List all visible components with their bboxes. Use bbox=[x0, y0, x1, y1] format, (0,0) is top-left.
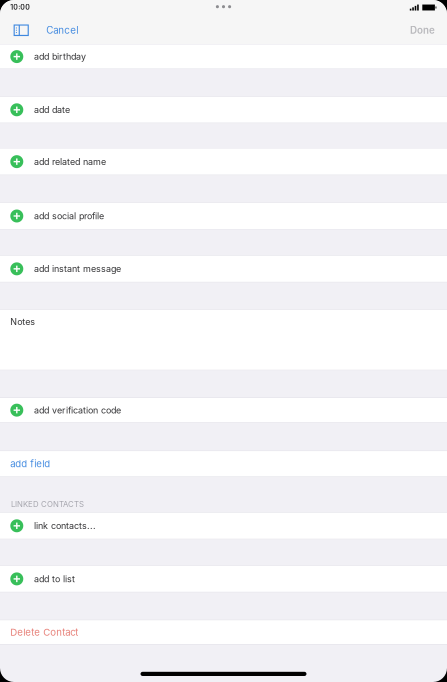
staticText: add date bbox=[34, 104, 70, 115]
button[interactable]: Notes bbox=[0, 310, 447, 370]
button[interactable]: Cancel bbox=[29, 18, 78, 44]
staticText: Done bbox=[410, 24, 435, 36]
button[interactable]: add field bbox=[0, 451, 447, 477]
button[interactable]: add birthday bbox=[0, 45, 447, 69]
staticText: 10:00 bbox=[10, 3, 30, 11]
button[interactable]: Done bbox=[410, 18, 447, 44]
staticText: add field bbox=[10, 458, 50, 470]
staticText: Delete Contact bbox=[10, 626, 78, 638]
button[interactable]: Show sidebar bbox=[0, 18, 29, 44]
staticText: add social profile bbox=[34, 211, 104, 221]
button[interactable]: add related name bbox=[0, 149, 447, 175]
button[interactable]: add verification code bbox=[0, 398, 447, 423]
staticText: add instant message bbox=[34, 263, 121, 274]
staticText: link contacts... bbox=[34, 520, 96, 531]
staticText: Notes bbox=[10, 316, 35, 327]
button[interactable]: add to list bbox=[0, 566, 447, 592]
staticText: Cancel bbox=[46, 24, 78, 36]
button[interactable]: link contacts... bbox=[0, 513, 447, 539]
button[interactable]: Delete Contact bbox=[0, 620, 447, 645]
button[interactable]: add date bbox=[0, 97, 447, 123]
button[interactable]: add instant message bbox=[0, 256, 447, 282]
staticText: add to list bbox=[34, 573, 75, 584]
staticText: LINKED CONTACTS bbox=[11, 499, 84, 509]
staticText: add birthday bbox=[34, 51, 86, 62]
button[interactable]: add social profile bbox=[0, 203, 447, 230]
staticText: add related name bbox=[34, 156, 106, 167]
staticText: add verification code bbox=[34, 405, 121, 415]
